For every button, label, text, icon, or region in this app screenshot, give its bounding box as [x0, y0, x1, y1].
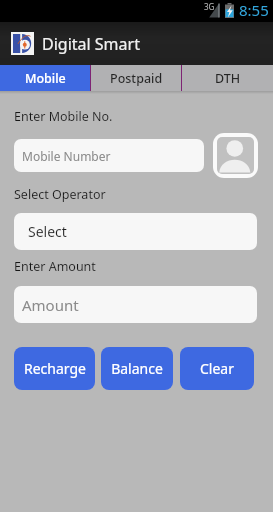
button[interactable]: Recharge: [14, 347, 95, 390]
staticText: Enter Amount: [14, 258, 96, 275]
staticText: Postpaid: [110, 70, 163, 87]
button[interactable]: Amount: [14, 286, 257, 323]
staticText: Digital Smart: [42, 33, 140, 55]
staticText: Balance: [111, 359, 163, 378]
staticText: Mobile: [25, 70, 66, 87]
staticText: Mobile Number: [22, 148, 111, 164]
staticText: Select Operator: [14, 186, 106, 203]
button[interactable]: Pick contact: [213, 133, 258, 178]
staticText: Select: [28, 222, 67, 241]
button[interactable]: Mobile Number: [14, 139, 204, 172]
staticText: Recharge: [24, 359, 86, 378]
staticText: 3G: [204, 1, 215, 12]
button[interactable]: Balance: [101, 347, 173, 390]
staticText: DTH: [215, 70, 241, 87]
button[interactable]: Postpaid: [91, 65, 181, 91]
staticText: Amount: [22, 295, 79, 315]
button[interactable]: Mobile: [0, 65, 90, 91]
staticText: 8:55: [239, 0, 269, 20]
staticText: Clear: [200, 359, 234, 378]
staticText: Enter Mobile No.: [14, 108, 113, 125]
button[interactable]: Select: [14, 213, 257, 250]
button[interactable]: DTH: [182, 65, 273, 91]
button[interactable]: Clear: [180, 347, 254, 390]
